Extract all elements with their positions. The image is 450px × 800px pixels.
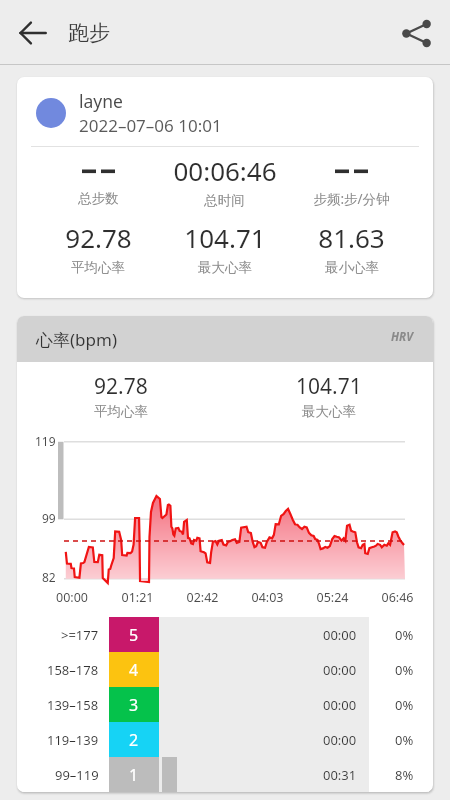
staticText: 平均心率 [71, 259, 125, 276]
staticText: >=177 [61, 626, 99, 644]
staticText: 8% [395, 766, 414, 784]
button[interactable]: Share [388, 5, 444, 61]
staticText: 06:46 [365, 589, 430, 606]
staticText: 00:00 [323, 626, 357, 644]
staticText: 81.63 [318, 220, 385, 255]
staticText: 05:24 [300, 589, 365, 606]
staticText: 00:06:46 [173, 153, 277, 188]
staticText: 104.71 [296, 372, 362, 401]
staticText: 104.71 [184, 220, 266, 255]
staticText: 最大心率 [198, 259, 252, 276]
staticText: 00:00 [323, 696, 357, 714]
staticText: 99–119 [55, 766, 99, 784]
staticText: layne [79, 89, 123, 113]
staticText: 最大心率 [302, 403, 356, 420]
staticText: 3 [129, 694, 139, 716]
staticText: 119–139 [47, 731, 99, 749]
staticText: 步频:步/分钟 [313, 190, 390, 208]
staticText: 心率(bpm) [36, 328, 118, 351]
staticText: 139–158 [47, 696, 99, 714]
staticText: 01:21 [105, 589, 170, 606]
staticText: 0% [395, 626, 414, 644]
staticText: HRV [391, 329, 413, 345]
staticText: 4 [129, 659, 139, 681]
staticText: 92.78 [65, 220, 132, 255]
staticText: 总步数 [78, 190, 119, 207]
staticText: 158–178 [47, 661, 99, 679]
staticText: 00:00 [39, 589, 105, 606]
staticText: 2022–07–06 10:01 [79, 114, 222, 137]
staticText: 02:42 [170, 589, 235, 606]
staticText: 0% [395, 696, 414, 714]
staticText: 92.78 [94, 372, 148, 401]
staticText: 总时间 [204, 192, 245, 209]
staticText: 04:03 [235, 589, 300, 606]
staticText: 5 [129, 624, 139, 646]
button[interactable]: Back [4, 4, 62, 62]
staticText: 0% [395, 661, 414, 679]
staticText: 82 [42, 569, 56, 585]
staticText: 00:31 [323, 766, 357, 784]
staticText: 00:00 [323, 731, 357, 749]
staticText: 跑步 [68, 20, 110, 46]
staticText: 0% [395, 731, 414, 749]
staticText: 00:00 [323, 661, 357, 679]
staticText: 119 [35, 433, 56, 449]
staticText: 最小心率 [325, 259, 379, 276]
staticText: 1 [129, 764, 139, 786]
staticText: 平均心率 [94, 403, 148, 420]
staticText: 99 [42, 510, 56, 526]
staticText: 2 [129, 729, 139, 751]
